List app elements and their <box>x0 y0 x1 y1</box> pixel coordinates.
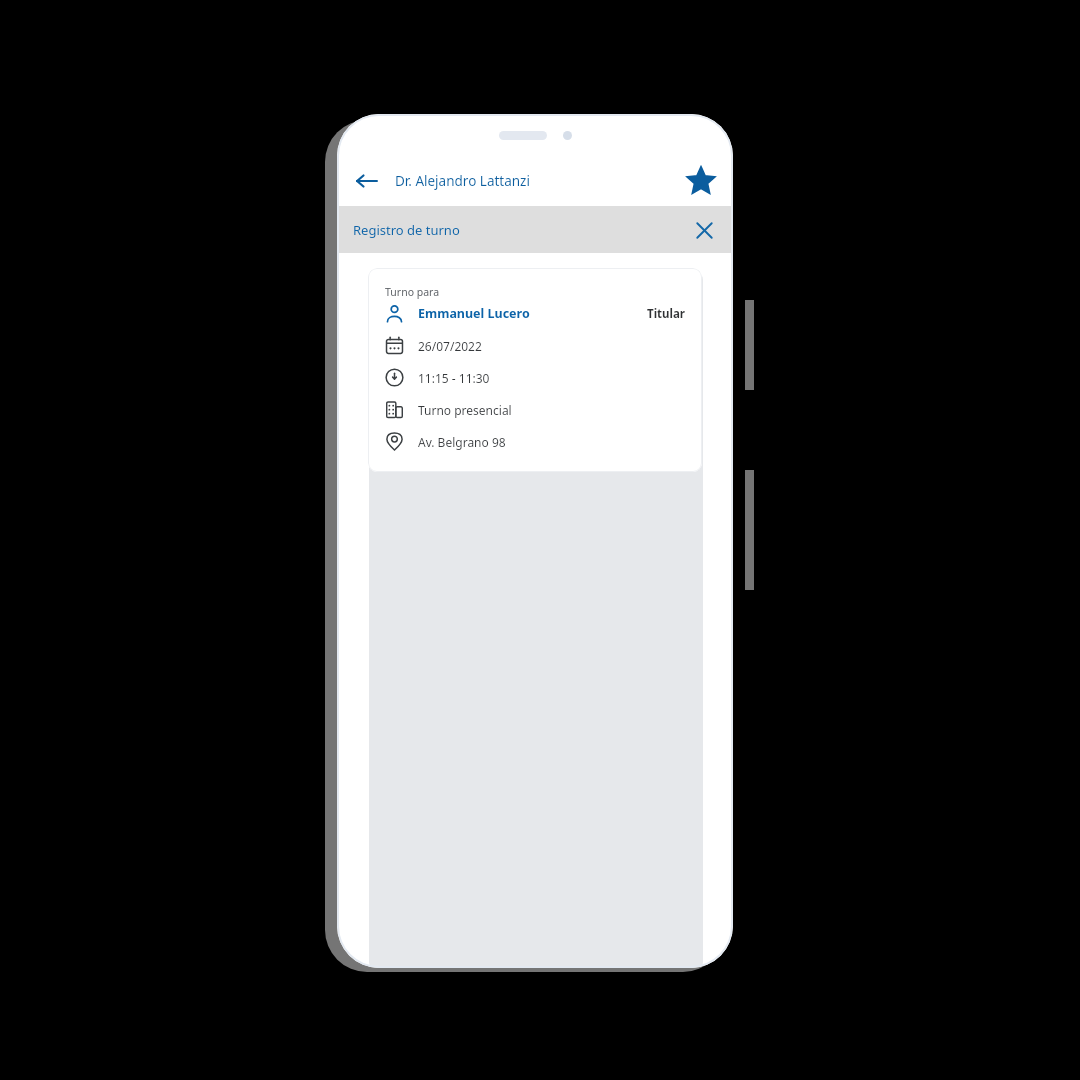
staticText: 11:15 - 11:30 <box>418 370 490 386</box>
staticText: Registro de turno <box>353 221 460 239</box>
button[interactable]: Back <box>349 163 385 199</box>
staticText: 26/07/2022 <box>418 338 482 354</box>
button[interactable]: Registro de turno <box>337 206 733 253</box>
button[interactable]: Close <box>689 215 719 245</box>
staticText: Titular <box>647 306 685 322</box>
staticText: Av. Belgrano 98 <box>418 434 506 450</box>
staticText: Turno presencial <box>418 402 512 418</box>
staticText: Emmanuel Lucero <box>418 305 530 322</box>
staticText: Dr. Alejandro Lattanzi <box>395 172 530 190</box>
button[interactable]: Favorite <box>683 163 719 199</box>
staticText: Turno para <box>385 285 440 299</box>
